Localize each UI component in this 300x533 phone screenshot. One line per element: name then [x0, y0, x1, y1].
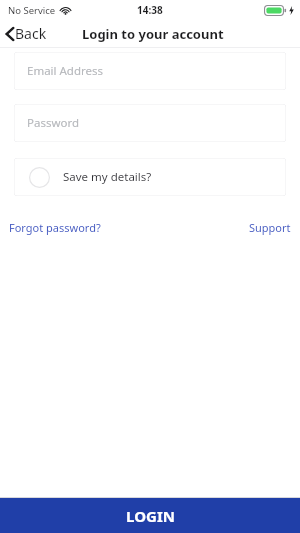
staticText: Back: [15, 24, 47, 43]
staticText: 14:38: [137, 3, 163, 17]
staticText: Support: [249, 220, 291, 235]
button[interactable]: Email Address: [0, 52, 300, 90]
button[interactable]: LOGIN: [0, 498, 300, 533]
staticText: No Service: [8, 4, 56, 17]
button[interactable]: Password: [0, 104, 300, 142]
staticText: Save my details?: [63, 169, 152, 185]
button[interactable]: Back: [0, 22, 55, 45]
staticText: LOGIN: [126, 506, 175, 526]
button[interactable]: Forgot password?: [9, 218, 101, 237]
staticText: Password: [27, 115, 80, 131]
button[interactable]: Save my details?: [0, 158, 300, 196]
staticText: Email Address: [27, 63, 104, 79]
staticText: Forgot password?: [9, 220, 101, 235]
staticText: Login to your account: [82, 25, 224, 43]
button[interactable]: Support: [249, 218, 291, 237]
